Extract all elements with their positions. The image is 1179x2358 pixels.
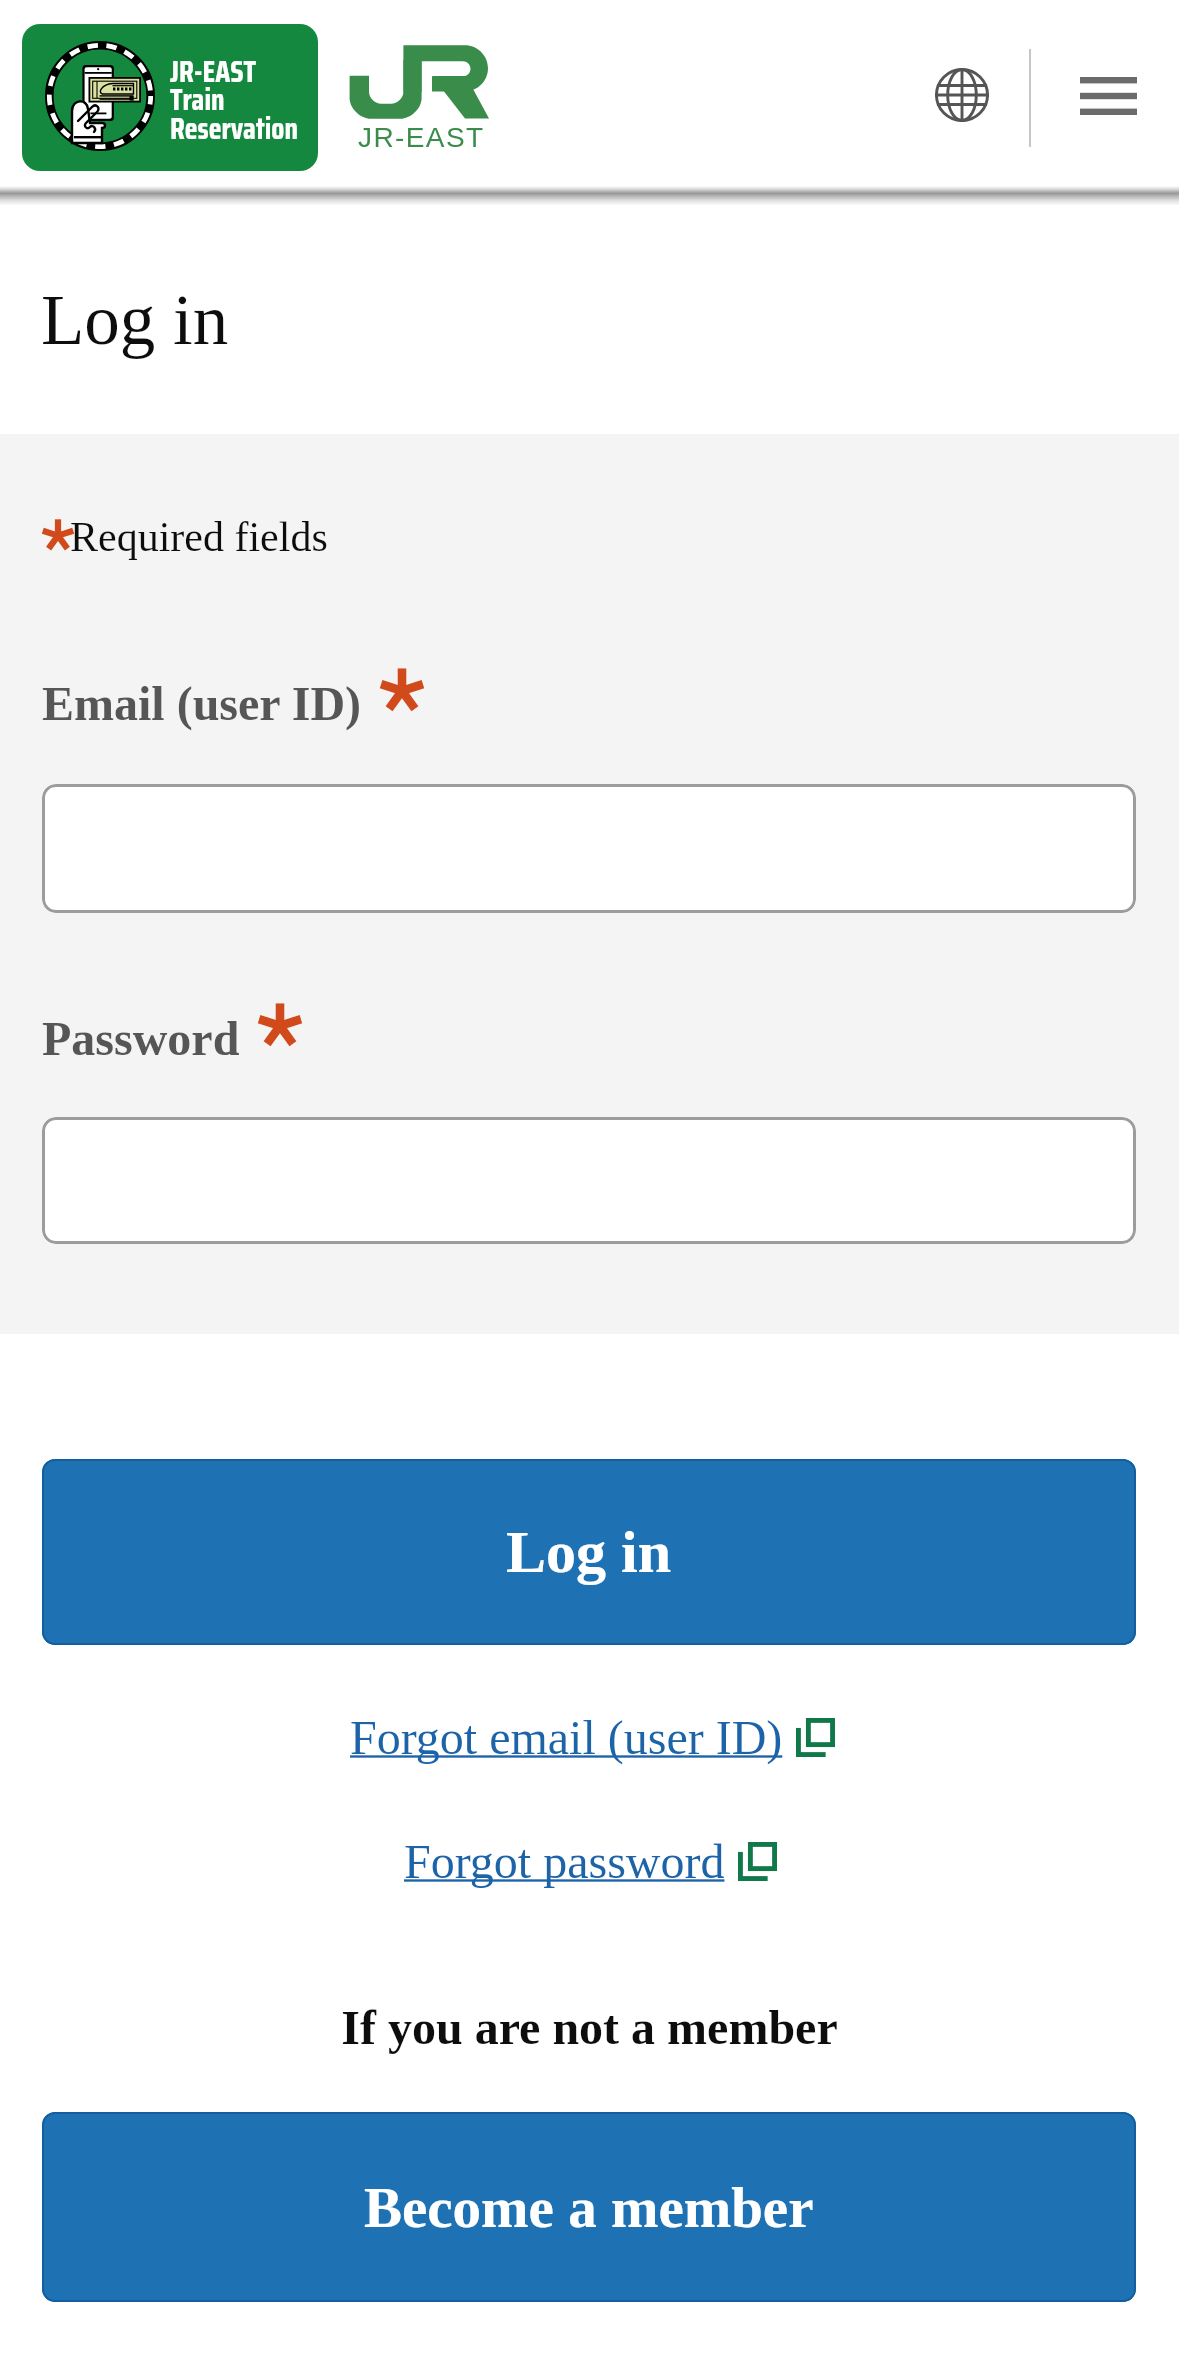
staticText: Email (user ID): [42, 677, 362, 730]
button[interactable]: JR-EAST home: [350, 40, 495, 124]
staticText: JR-EAST: [358, 122, 485, 153]
button[interactable]: JR-EAST: [22, 24, 318, 171]
staticText: Password: [42, 1012, 240, 1065]
staticText: Reservation: [170, 105, 298, 152]
staticText: JR-EAST: [170, 48, 257, 95]
button[interactable]: Log in: [42, 1459, 1136, 1645]
staticText: Train: [170, 76, 225, 123]
button[interactable]: Language: [935, 68, 989, 122]
button[interactable]: Forgot password: [404, 1835, 777, 1888]
staticText: Forgot email (user ID): [350, 1711, 783, 1764]
button[interactable]: Forgot email (user ID): [350, 1711, 835, 1764]
staticText: Log in: [41, 281, 229, 360]
button[interactable]: Menu: [1080, 77, 1137, 115]
button[interactable]: [42, 1117, 1136, 1244]
staticText: Become a member: [364, 2176, 814, 2239]
staticText: Log in: [506, 1519, 672, 1585]
staticText: If you are not a member: [0, 2001, 1179, 2054]
button[interactable]: Become a member: [42, 2112, 1136, 2302]
staticText: Forgot password: [404, 1835, 725, 1888]
staticText: Required fields: [70, 514, 328, 561]
button[interactable]: [42, 784, 1136, 913]
